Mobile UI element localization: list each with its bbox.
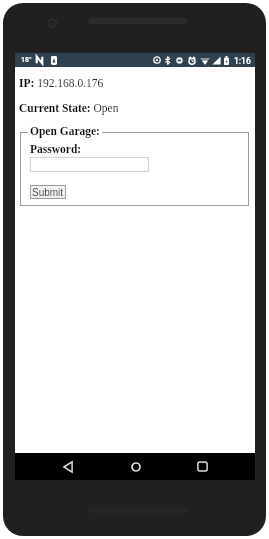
button[interactable]: Back: [48, 453, 87, 480]
button[interactable]: [30, 157, 149, 172]
button[interactable]: Recent apps: [183, 453, 222, 480]
staticText: 1:16: [234, 56, 251, 66]
staticText: Password:: [30, 143, 82, 156]
button[interactable]: Home: [116, 453, 155, 480]
staticText: Open Garage:: [30, 125, 100, 138]
staticText: Submit: [32, 187, 64, 198]
staticText: IP: 192.168.0.176: [19, 77, 104, 90]
staticText: 18°: [21, 56, 32, 64]
staticText: Current State: Open: [19, 102, 119, 115]
button[interactable]: Submit: [30, 185, 66, 199]
